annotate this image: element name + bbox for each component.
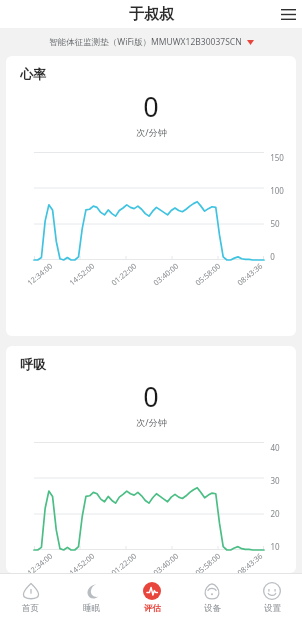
staticText: 05:58:00 [193, 551, 222, 573]
staticText: 14:52:00 [67, 551, 96, 573]
staticText: 08:43:36 [235, 551, 264, 573]
button[interactable]: 设置 [242, 577, 302, 618]
staticText: 设备 [204, 603, 221, 614]
staticText: 150 [270, 152, 284, 161]
staticText: 于叔叔 [129, 5, 174, 24]
staticText: 呼吸 [20, 356, 46, 372]
staticText: 睡眠 [83, 603, 100, 614]
staticText: 评估 [144, 603, 161, 614]
button[interactable]: 首页 [0, 577, 61, 618]
button[interactable]: 智能体征监测垫（WiFi版）MMUWX12B30037SCN [0, 28, 302, 56]
staticText: 设置 [264, 603, 281, 614]
staticText: 12:34:00 [25, 261, 54, 288]
staticText: 智能体征监测垫（WiFi版）MMUWX12B30037SCN [49, 36, 242, 48]
button[interactable]: Menu [274, 0, 302, 28]
staticText: 100 [270, 185, 284, 194]
button[interactable]: 评估 [122, 577, 182, 618]
staticText: 50 [270, 218, 280, 227]
staticText: 0 [143, 88, 159, 125]
staticText: 01:22:00 [109, 551, 138, 573]
staticText: 30 [270, 475, 280, 484]
staticText: 40 [270, 442, 280, 451]
staticText: 0 [270, 251, 275, 260]
staticText: 03:40:00 [151, 551, 180, 573]
staticText: 次/分钟 [136, 126, 167, 138]
staticText: 0 [143, 378, 159, 415]
staticText: 08:43:36 [235, 261, 264, 288]
staticText: 心率 [20, 66, 46, 82]
staticText: 05:58:00 [193, 261, 222, 288]
staticText: 20 [270, 508, 280, 517]
staticText: 10 [270, 541, 280, 550]
staticText: 首页 [22, 603, 39, 614]
staticText: 03:40:00 [151, 261, 180, 288]
button[interactable]: 睡眠 [61, 577, 122, 618]
staticText: 次/分钟 [136, 416, 167, 428]
button[interactable]: 设备 [182, 577, 242, 618]
button[interactable]: 心率 [6, 56, 296, 336]
staticText: 14:52:00 [67, 261, 96, 288]
staticText: 01:22:00 [109, 261, 138, 288]
staticText: 12:34:00 [25, 551, 54, 573]
button[interactable]: 呼吸 [6, 346, 296, 573]
